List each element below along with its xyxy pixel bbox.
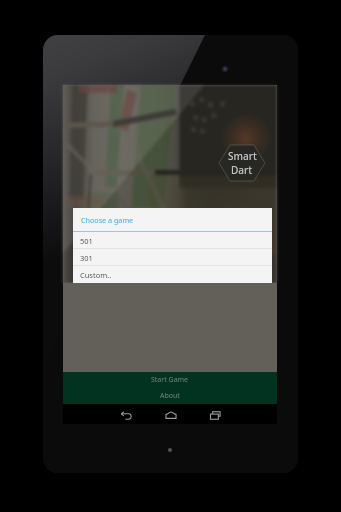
staticText: Smart [228,149,257,163]
staticText: Choose a game [81,215,134,225]
button[interactable]: Start Game [63,372,277,388]
staticText: Dart [231,163,253,177]
staticText: 501 [80,236,93,246]
staticText: About [160,391,180,401]
button[interactable]: About [63,388,277,404]
button[interactable]: 501 [73,232,272,249]
button[interactable]: 301 [73,249,272,266]
staticText: Start Game [151,375,189,385]
staticText: Custom.. [80,270,112,280]
button[interactable]: Back [106,405,146,425]
button[interactable]: Custom.. [73,266,272,283]
button[interactable]: Home [151,405,191,425]
button[interactable]: Recent apps [196,405,236,425]
staticText: 301 [80,253,93,263]
